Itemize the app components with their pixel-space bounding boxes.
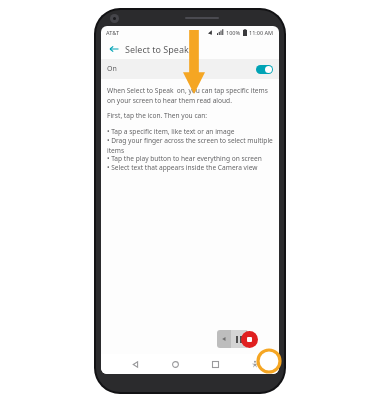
- staticText: AT&T: [106, 29, 120, 36]
- button[interactable]: Stop: [241, 331, 258, 348]
- button[interactable]: Accessibility: [235, 354, 275, 374]
- staticText: 100%: [226, 29, 241, 36]
- button[interactable]: Back: [115, 354, 155, 374]
- button[interactable]: Home: [155, 354, 195, 374]
- staticText: • Tap the play button to hear everything…: [107, 154, 262, 163]
- button[interactable]: On: [101, 59, 279, 79]
- staticText: • Select text that appears inside the Ca…: [107, 163, 258, 172]
- button[interactable]: Back: [106, 41, 122, 57]
- staticText: When Select to Speak on, you can tap spe…: [107, 86, 274, 104]
- staticText: • Drag your finger across the screen to …: [107, 136, 274, 154]
- staticText: First, tap the icon. Then you can:: [107, 111, 208, 120]
- other: Accessibility button highlight: [256, 348, 282, 374]
- staticText: Select to Speak: [125, 43, 189, 55]
- staticText: 11:00 AM: [249, 29, 274, 36]
- staticText: • Tap a specific item, like text or an i…: [107, 127, 235, 136]
- staticText: On: [107, 64, 117, 74]
- button[interactable]: Previous: [217, 330, 231, 348]
- button[interactable]: Pause: [231, 330, 246, 348]
- button[interactable]: Recent apps: [195, 354, 235, 374]
